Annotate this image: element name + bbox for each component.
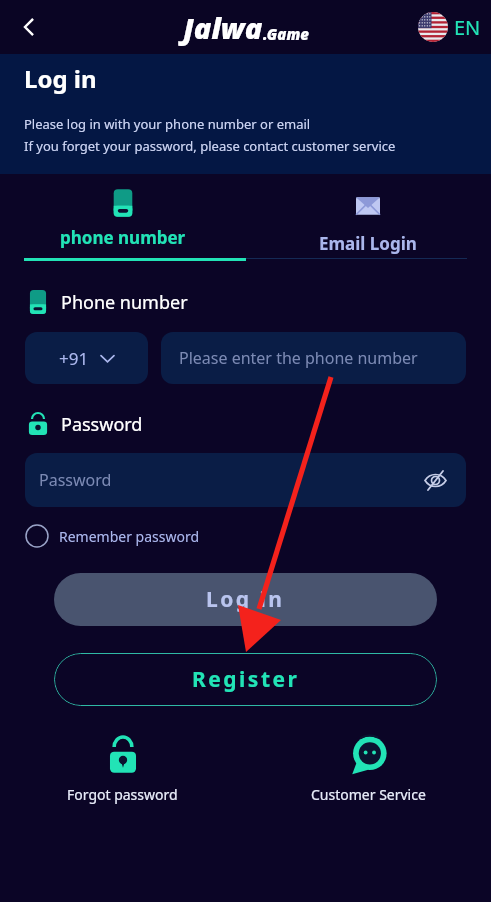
button[interactable]: Email Login xyxy=(245,174,491,258)
staticText: Password xyxy=(61,412,143,437)
staticText: EN xyxy=(454,14,481,41)
staticText: Email Login xyxy=(319,232,417,255)
staticText: Phone number xyxy=(61,290,188,315)
button[interactable]: Remember password xyxy=(25,524,200,548)
staticText: Register xyxy=(192,665,300,694)
staticText: phone number xyxy=(60,226,186,249)
button[interactable]: phone number xyxy=(0,174,245,258)
button[interactable]: Forgot password xyxy=(0,734,245,804)
button[interactable]: Customer Service xyxy=(245,734,491,804)
staticText: Customer Service xyxy=(311,785,426,804)
staticText: .Game xyxy=(263,24,309,44)
staticText: Remember password xyxy=(59,527,200,546)
staticText: If you forget your password, please cont… xyxy=(24,137,396,155)
staticText: Log in xyxy=(206,585,285,614)
button[interactable]: EN xyxy=(418,12,481,42)
button[interactable]: +91 xyxy=(25,332,148,384)
button[interactable]: Show password xyxy=(420,465,450,495)
staticText: Jalwa xyxy=(183,8,263,47)
button[interactable]: Please enter the phone number xyxy=(161,332,466,384)
button[interactable]: Back xyxy=(8,6,50,48)
staticText: Please enter the phone number xyxy=(179,347,418,369)
staticText: Forgot password xyxy=(67,785,178,804)
button[interactable]: Register xyxy=(54,653,437,706)
button[interactable]: Log in xyxy=(54,573,437,626)
staticText: Please log in with your phone number or … xyxy=(24,115,311,133)
staticText: +91 xyxy=(59,347,89,370)
staticText: Log in xyxy=(24,62,97,95)
button[interactable]: Password xyxy=(25,453,466,507)
staticText: Password xyxy=(39,469,112,491)
